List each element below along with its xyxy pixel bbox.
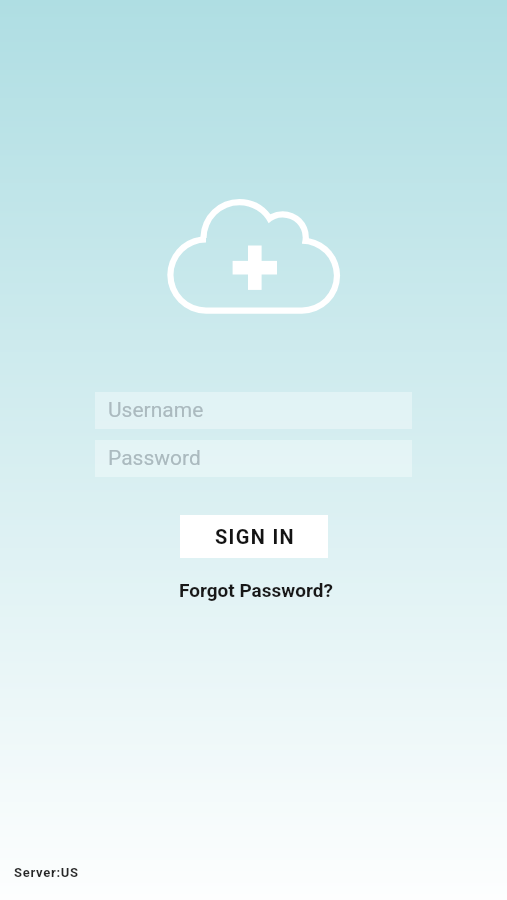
button[interactable]: Username <box>95 392 412 429</box>
staticText: Server:US <box>14 865 79 880</box>
staticText: Password <box>108 446 201 471</box>
staticText: Forgot Password? <box>179 579 333 601</box>
other: App logo <box>160 190 350 325</box>
staticText: Username <box>108 398 204 423</box>
staticText: SIGN IN <box>215 525 295 548</box>
button[interactable]: Forgot Password? <box>169 576 339 604</box>
button[interactable]: Password <box>95 440 412 477</box>
button[interactable]: SIGN IN <box>180 515 328 558</box>
